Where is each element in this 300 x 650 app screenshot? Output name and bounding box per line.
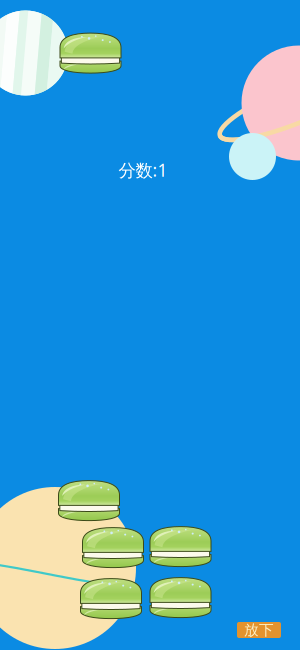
staticText: 放下 — [244, 621, 274, 639]
button[interactable]: 放下 — [237, 622, 281, 638]
staticText: 分数:1 — [118, 158, 167, 181]
